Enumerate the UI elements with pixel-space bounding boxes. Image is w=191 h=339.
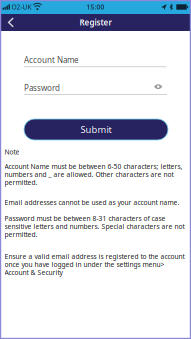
staticText: Register	[79, 17, 111, 28]
staticText: O2-UK	[11, 3, 31, 11]
staticText: Account Name	[24, 54, 79, 65]
staticText: 15:00	[86, 3, 104, 11]
staticText: Submit	[80, 123, 111, 136]
staticText: Account Name must be between 6-50 charac…	[4, 162, 182, 171]
staticText: Password	[24, 82, 60, 93]
staticText: permitted.	[4, 230, 37, 239]
staticText: sensitive letters and numbers. Special c…	[4, 222, 184, 231]
staticText: Account & Security	[4, 268, 62, 277]
button[interactable]: Show password	[154, 84, 162, 89]
staticText: Password must be between 8-31 characters…	[4, 214, 165, 223]
button[interactable]: Back	[0, 14, 24, 31]
button[interactable]: Password	[24, 82, 167, 95]
staticText: Ensure a valid email address is register…	[4, 252, 184, 261]
staticText: numbers and _ are allowed. Other charact…	[4, 170, 173, 179]
button[interactable]: Account Name	[24, 54, 166, 67]
staticText: once you have logged in under the settin…	[4, 260, 164, 269]
staticText: Note	[4, 147, 19, 156]
button[interactable]: Submit	[24, 119, 168, 140]
staticText: permitted.	[4, 178, 37, 187]
staticText: Email addresses cannot be used as your a…	[4, 198, 179, 207]
